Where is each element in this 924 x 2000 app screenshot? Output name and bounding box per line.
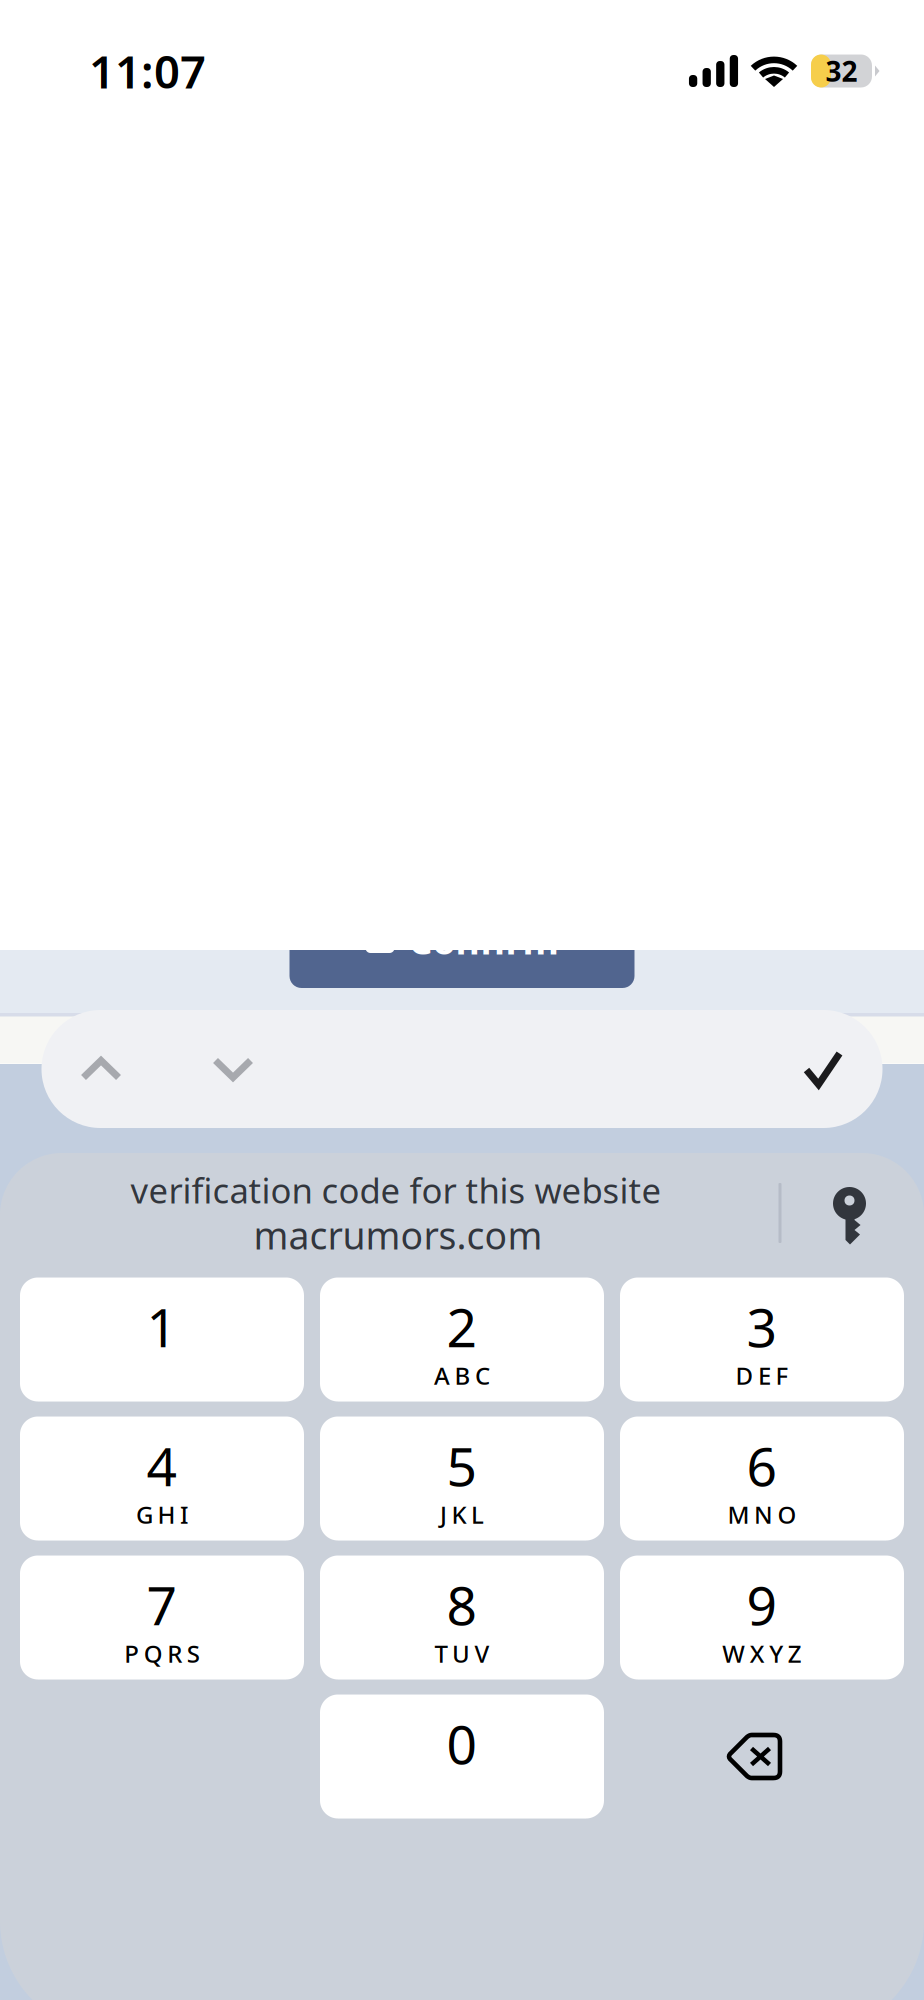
staticText: WXYZ: [722, 1638, 802, 1669]
staticText: GHI: [136, 1499, 188, 1530]
staticText: 0: [446, 1708, 477, 1779]
button[interactable]: 7: [20, 1555, 304, 1679]
button[interactable]: 6: [620, 1416, 904, 1540]
button[interactable]: verification code for this website: [18, 1151, 906, 1275]
button[interactable]: Delete: [620, 1694, 904, 1818]
staticText: 7: [146, 1569, 177, 1640]
staticText: 5: [446, 1430, 477, 1501]
button[interactable]: Next field: [185, 1010, 281, 1128]
button[interactable]: 0: [320, 1694, 604, 1818]
staticText: TUV: [434, 1638, 489, 1669]
staticText: 11:07: [89, 41, 206, 101]
staticText: 1: [146, 1291, 177, 1362]
staticText: macrumors.com: [253, 1210, 542, 1260]
staticText: 2: [446, 1291, 477, 1362]
button[interactable]: 4: [20, 1416, 304, 1540]
button[interactable]: 9: [620, 1555, 904, 1679]
staticText: 9: [746, 1569, 777, 1640]
button[interactable]: 8: [320, 1555, 604, 1679]
button[interactable]: 5: [320, 1416, 604, 1540]
staticText: PQRS: [124, 1638, 200, 1669]
button[interactable]: Done: [769, 1010, 877, 1128]
staticText: verification code for this website: [130, 1167, 661, 1213]
staticText: JKL: [440, 1499, 484, 1530]
button[interactable]: 3: [620, 1277, 904, 1401]
staticText: ABC: [434, 1360, 490, 1391]
staticText: 4: [146, 1430, 177, 1501]
button[interactable]: Previous field: [53, 1010, 149, 1128]
staticText: MNO: [727, 1499, 796, 1530]
staticText: 6: [746, 1430, 777, 1501]
button[interactable]: 1: [20, 1277, 304, 1401]
staticText: DEF: [735, 1360, 788, 1391]
staticText: 32: [825, 52, 857, 90]
staticText: Confirm: [408, 915, 558, 965]
button[interactable]: 2: [320, 1277, 604, 1401]
button[interactable]: Confirm: [289, 896, 634, 988]
staticText: 8: [446, 1569, 477, 1640]
staticText: 3: [746, 1291, 777, 1362]
